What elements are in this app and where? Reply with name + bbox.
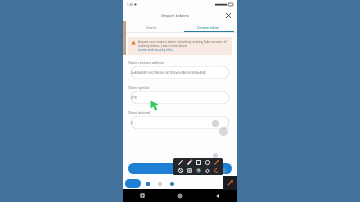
staticText: Token decimal <box>128 110 151 114</box>
button[interactable]: Search <box>123 22 180 32</box>
staticText: Next <box>176 166 184 171</box>
button[interactable]: UTK <box>128 91 232 104</box>
button[interactable]: 6 <box>128 116 232 129</box>
staticText: 1:48 <box>127 3 133 7</box>
button[interactable]: Tool 6 <box>185 167 194 174</box>
button[interactable]: Custom token <box>180 22 237 32</box>
button[interactable]: Tool 3 <box>203 159 212 166</box>
button[interactable]: Activity <box>158 182 162 186</box>
staticText: Token contract address <box>128 60 164 64</box>
button[interactable]: Home <box>161 189 199 202</box>
staticText: Custom token <box>197 25 220 29</box>
button[interactable]: Recents <box>123 189 161 202</box>
staticText: Anyone can create a token, including cre… <box>138 40 229 48</box>
button[interactable]: Annotate <box>223 176 237 190</box>
staticText: scams and security risks. <box>138 48 174 52</box>
staticText: 0xA0b86991c6218b36c1d19D4a2e9Eb0cE3606eB… <box>131 71 206 75</box>
button[interactable]: Tool 7 <box>194 167 203 174</box>
button[interactable]: Next <box>128 163 232 174</box>
button[interactable]: Close <box>224 11 233 20</box>
staticText: UTK <box>131 96 137 100</box>
button[interactable]: Settings <box>170 182 174 186</box>
button[interactable]: Tool 0 <box>175 159 185 166</box>
button[interactable]: Tool 2 <box>194 159 203 166</box>
button[interactable]: Tool 8 <box>203 167 212 174</box>
button[interactable]: 0xA0b86991c6218b36c1d19D4a2e9Eb0cE3606eB… <box>128 66 232 79</box>
staticText: Search <box>146 25 157 29</box>
button[interactable]: Tool 4 <box>212 159 221 166</box>
staticText: Token symbol <box>128 85 150 89</box>
button[interactable]: Tool 9 <box>212 167 221 174</box>
button[interactable]: Back <box>199 189 237 202</box>
button[interactable]: Tool 5 <box>175 167 185 174</box>
button[interactable]: Tool 1 <box>185 159 194 166</box>
button[interactable]: Wallet <box>125 179 141 188</box>
staticText: 6 <box>131 121 133 125</box>
button[interactable]: Browser <box>146 182 150 186</box>
staticText: Import tokens <box>161 13 189 18</box>
